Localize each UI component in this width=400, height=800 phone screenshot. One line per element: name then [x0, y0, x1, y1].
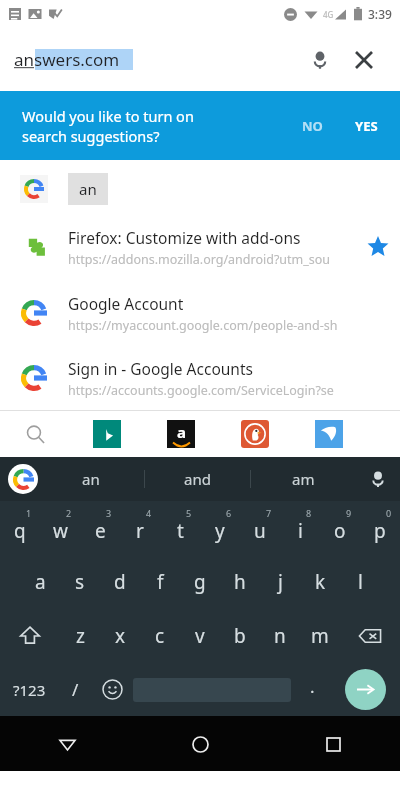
button[interactable]: 5: [160, 501, 200, 555]
button[interactable]: NO: [292, 109, 333, 143]
button[interactable]: Search: [0, 411, 70, 457]
button[interactable]: and: [145, 457, 250, 501]
button[interactable]: Recents: [309, 720, 357, 768]
button[interactable]: Clear: [342, 38, 386, 82]
button[interactable]: z: [60, 609, 100, 663]
staticText: Firefox: Customize with add-ons: [68, 227, 301, 248]
button[interactable]: Amazon: [144, 411, 218, 457]
staticText: c: [155, 623, 165, 649]
button[interactable]: an: [0, 164, 400, 214]
button[interactable]: am: [251, 457, 356, 501]
staticText: w: [53, 518, 68, 544]
button[interactable]: j: [260, 555, 300, 609]
button[interactable]: Home: [176, 720, 224, 768]
staticText: and: [184, 469, 211, 489]
button[interactable]: Go: [331, 663, 400, 716]
staticText: 6: [226, 507, 232, 519]
button[interactable]: Would you like to turn on search suggest…: [0, 91, 400, 160]
staticText: a: [35, 569, 46, 595]
button[interactable]: DuckDuckGo: [218, 411, 292, 457]
button[interactable]: s: [60, 555, 100, 609]
button[interactable]: Google Account: [0, 280, 400, 346]
button[interactable]: Voice search: [298, 38, 342, 82]
staticText: i: [298, 518, 303, 544]
button[interactable]: Back: [43, 720, 91, 768]
button[interactable]: Twitter: [292, 411, 366, 457]
button[interactable]: f: [140, 555, 180, 609]
staticText: f: [157, 569, 164, 595]
staticText: p: [374, 518, 386, 544]
button[interactable]: 7: [240, 501, 280, 555]
button[interactable]: a: [20, 555, 60, 609]
button[interactable]: Google: [8, 464, 38, 494]
staticText: Would you like to turn on search suggest…: [22, 106, 227, 146]
staticText: Sign in - Google Accounts: [68, 358, 253, 379]
staticText: 8: [306, 507, 312, 519]
staticText: g: [194, 569, 206, 595]
staticText: 9: [346, 507, 352, 519]
button[interactable]: 3: [80, 501, 120, 555]
button[interactable]: Backspace: [340, 609, 400, 663]
staticText: https://accounts.google.com/ServiceLogin…: [68, 382, 334, 399]
staticText: r: [136, 518, 144, 544]
button[interactable]: 0: [360, 501, 400, 555]
staticText: 4: [146, 507, 152, 519]
staticText: s: [75, 569, 85, 595]
button[interactable]: /: [58, 663, 93, 716]
button[interactable]: 9: [320, 501, 360, 555]
button[interactable]: m: [300, 609, 340, 663]
button[interactable]: Space: [131, 663, 293, 716]
button[interactable]: n: [260, 609, 300, 663]
button[interactable]: Voice input: [356, 457, 400, 501]
button[interactable]: x: [100, 609, 140, 663]
button[interactable]: l: [340, 555, 380, 609]
button[interactable]: Bing: [70, 411, 144, 457]
staticText: ?123: [13, 680, 46, 700]
button[interactable]: .: [293, 663, 331, 716]
staticText: 4G: [323, 9, 334, 20]
staticText: answers.com: [14, 48, 120, 71]
staticText: Google Account: [68, 293, 184, 314]
button[interactable]: an: [38, 457, 144, 501]
staticText: u: [254, 518, 266, 544]
button[interactable]: 8: [280, 501, 320, 555]
button[interactable]: 6: [200, 501, 240, 555]
staticText: z: [76, 623, 85, 649]
button[interactable]: YES: [345, 109, 388, 143]
staticText: https://myaccount.google.com/people-and-…: [68, 317, 338, 334]
staticText: y: [215, 518, 225, 544]
button[interactable]: Emoji: [93, 663, 131, 716]
staticText: .: [310, 675, 315, 698]
button[interactable]: Shift: [0, 609, 60, 663]
staticText: 5: [186, 507, 192, 519]
staticText: an: [79, 179, 97, 199]
staticText: /: [72, 678, 79, 701]
button[interactable]: 4: [120, 501, 160, 555]
button[interactable]: d: [100, 555, 140, 609]
staticText: 0: [386, 507, 392, 519]
button[interactable]: v: [180, 609, 220, 663]
button[interactable]: Bookmarked: [356, 225, 400, 269]
button[interactable]: b: [220, 609, 260, 663]
staticText: b: [234, 623, 246, 649]
button[interactable]: Sign in - Google Accounts: [0, 346, 400, 410]
staticText: v: [195, 623, 205, 649]
button[interactable]: Firefox: Customize with add-ons: [0, 214, 400, 280]
staticText: 7: [266, 507, 272, 519]
button[interactable]: k: [300, 555, 340, 609]
staticText: a: [177, 422, 186, 442]
button[interactable]: 2: [40, 501, 80, 555]
button[interactable]: g: [180, 555, 220, 609]
staticText: h: [234, 569, 246, 595]
staticText: l: [358, 569, 363, 595]
button[interactable]: ?123: [0, 663, 58, 716]
button[interactable]: h: [220, 555, 260, 609]
staticText: x: [115, 623, 126, 649]
staticText: e: [95, 518, 106, 544]
button[interactable]: 1: [0, 501, 40, 555]
staticText: k: [315, 569, 326, 595]
staticText: https://addons.mozilla.org/android?utm_s…: [68, 251, 331, 268]
staticText: 1: [26, 507, 32, 519]
staticText: 3:39: [368, 6, 392, 22]
button[interactable]: c: [140, 609, 180, 663]
